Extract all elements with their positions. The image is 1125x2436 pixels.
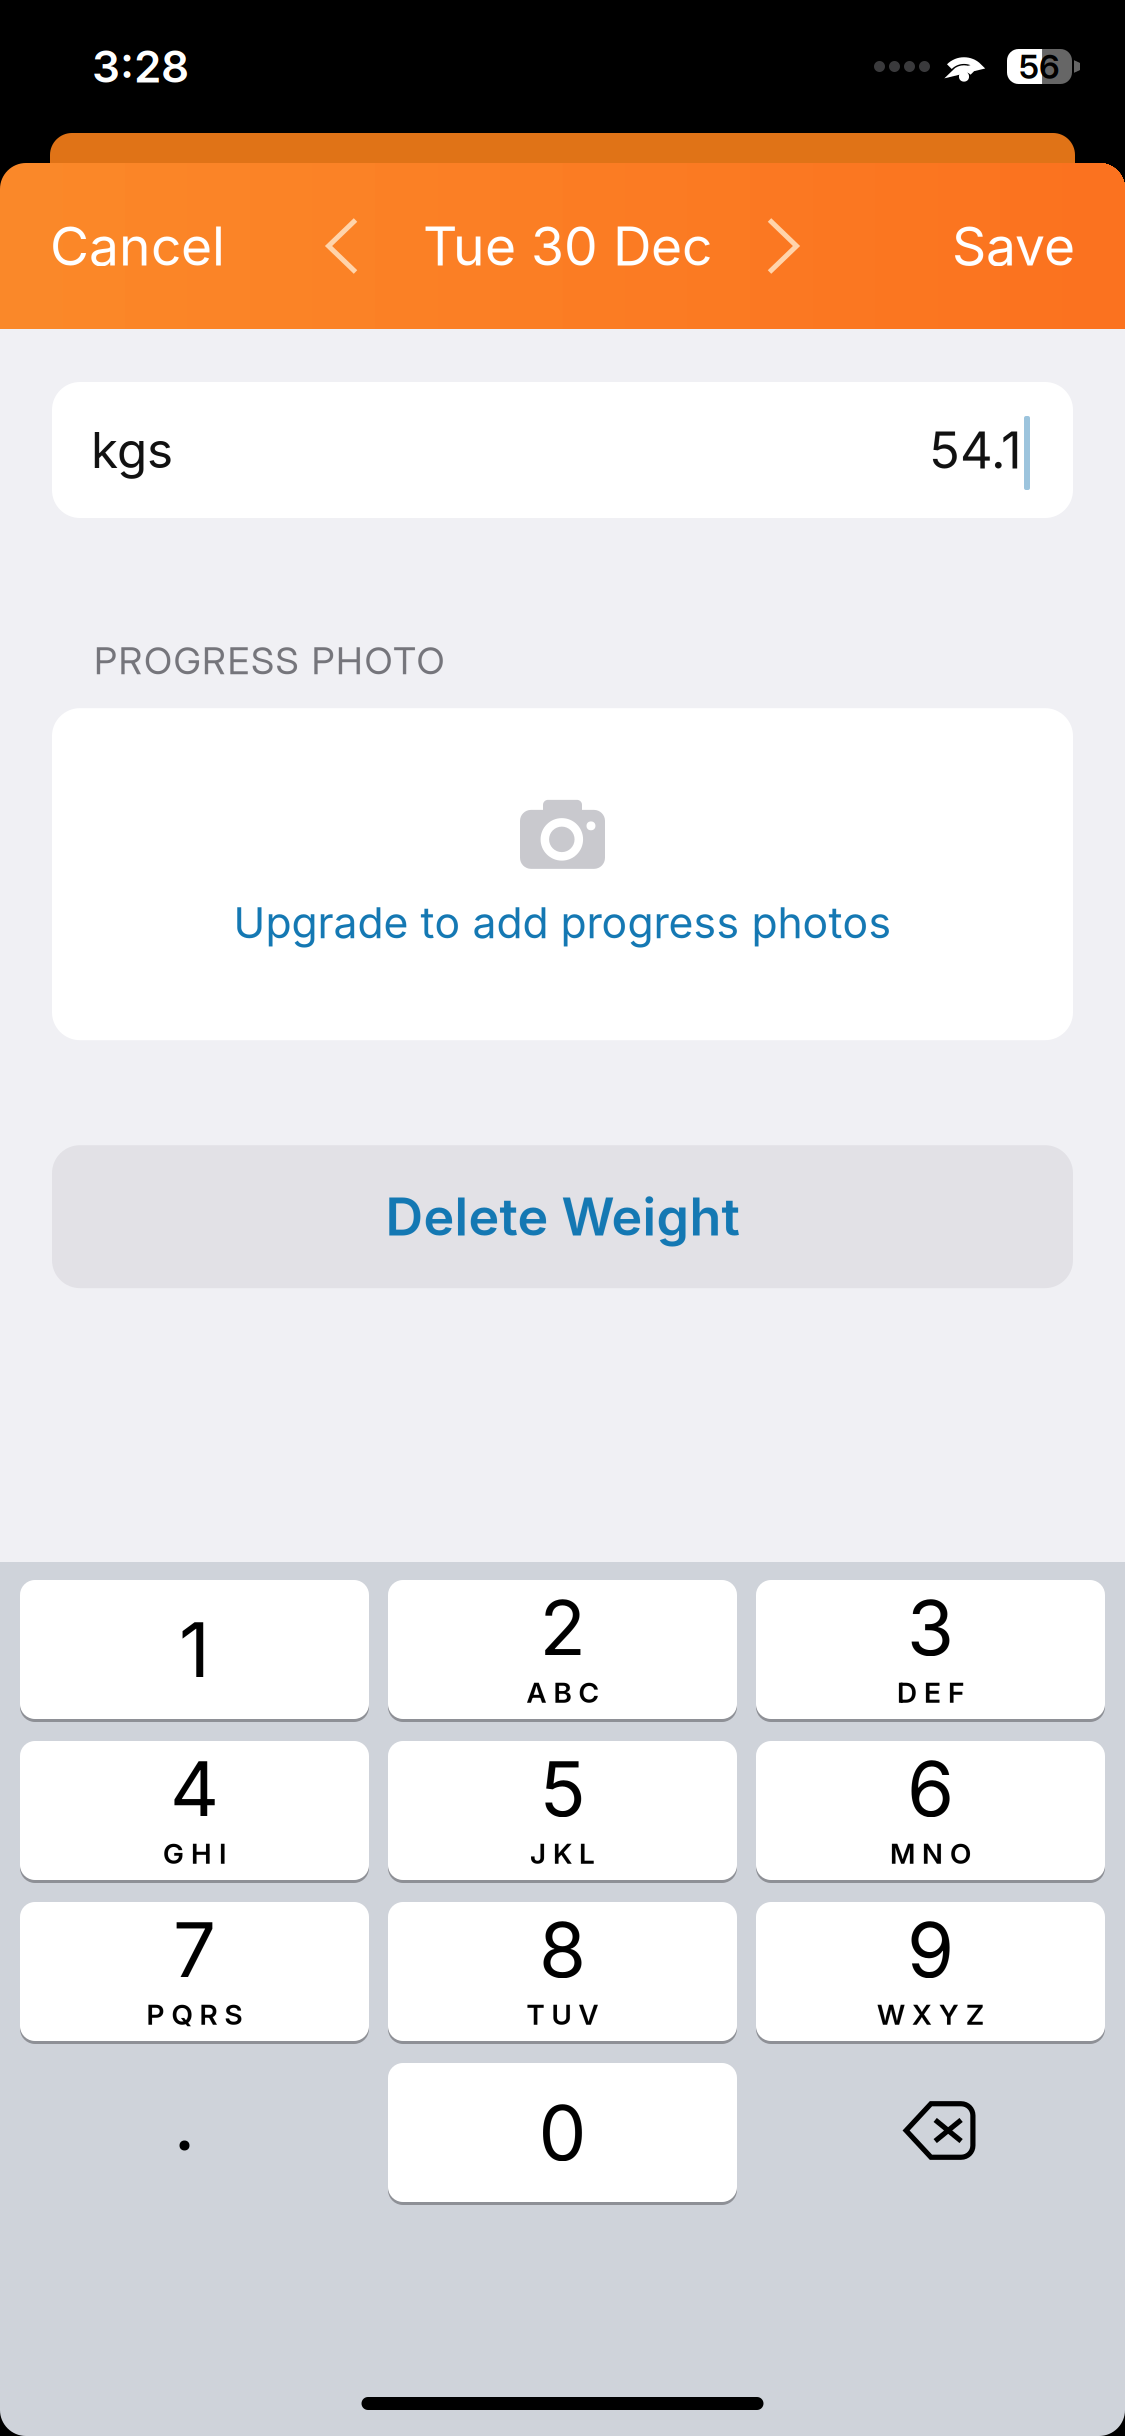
button[interactable]: 7 bbox=[20, 1902, 369, 2041]
button[interactable]: Next day bbox=[751, 197, 815, 294]
button[interactable]: 1 bbox=[20, 1580, 369, 1719]
staticText: Cancel bbox=[50, 214, 225, 278]
button[interactable]: 6 bbox=[756, 1741, 1105, 1880]
staticText: TUV bbox=[526, 1997, 598, 2031]
button[interactable]: 4 bbox=[20, 1741, 369, 1880]
staticText: PQRS bbox=[146, 1997, 242, 2031]
staticText: 1 bbox=[179, 1603, 210, 1695]
button[interactable]: Previous day bbox=[310, 197, 374, 294]
staticText: 8 bbox=[539, 1904, 586, 1996]
staticText: Delete Weight bbox=[385, 1185, 739, 1248]
staticText: MNO bbox=[890, 1836, 971, 1870]
button[interactable]: Save bbox=[940, 194, 1087, 298]
staticText: 56 bbox=[1019, 46, 1060, 87]
staticText: 3 bbox=[907, 1582, 954, 1674]
staticText: 4 bbox=[170, 1743, 219, 1835]
button[interactable]: Cancel bbox=[38, 194, 237, 298]
button[interactable]: 0 bbox=[388, 2063, 737, 2202]
button[interactable]: Delete bbox=[756, 2063, 1105, 2202]
staticText: GHI bbox=[163, 1836, 226, 1870]
staticText: Tue 30 Dec bbox=[423, 214, 712, 278]
staticText: DEF bbox=[897, 1675, 964, 1709]
staticText: 0 bbox=[538, 2086, 586, 2178]
staticText: PROGRESS PHOTO bbox=[94, 638, 444, 683]
staticText: 6 bbox=[907, 1743, 954, 1835]
staticText: WXYZ bbox=[877, 1997, 984, 2031]
staticText: Save bbox=[952, 214, 1075, 278]
staticText: ABC bbox=[526, 1675, 598, 1709]
staticText: 9 bbox=[907, 1904, 954, 1996]
staticText: 7 bbox=[173, 1904, 216, 1996]
staticText: 3:28 bbox=[92, 40, 189, 93]
staticText: 2 bbox=[539, 1582, 585, 1674]
staticText: JKL bbox=[530, 1836, 595, 1870]
staticText: kgs bbox=[91, 420, 173, 480]
button[interactable]: Delete Weight bbox=[52, 1145, 1073, 1288]
button[interactable]: Decimal point bbox=[20, 2063, 369, 2202]
button[interactable]: 8 bbox=[388, 1902, 737, 2041]
button[interactable]: Upgrade to add progress photos bbox=[233, 869, 891, 948]
button[interactable]: 2 bbox=[388, 1580, 737, 1719]
button[interactable]: 5 bbox=[388, 1741, 737, 1880]
staticText: 5 bbox=[539, 1743, 585, 1835]
button[interactable]: 9 bbox=[756, 1902, 1105, 2041]
staticText: 54.1 bbox=[929, 419, 1022, 481]
staticText: Upgrade to add progress photos bbox=[233, 897, 891, 948]
button[interactable]: 3 bbox=[756, 1580, 1105, 1719]
